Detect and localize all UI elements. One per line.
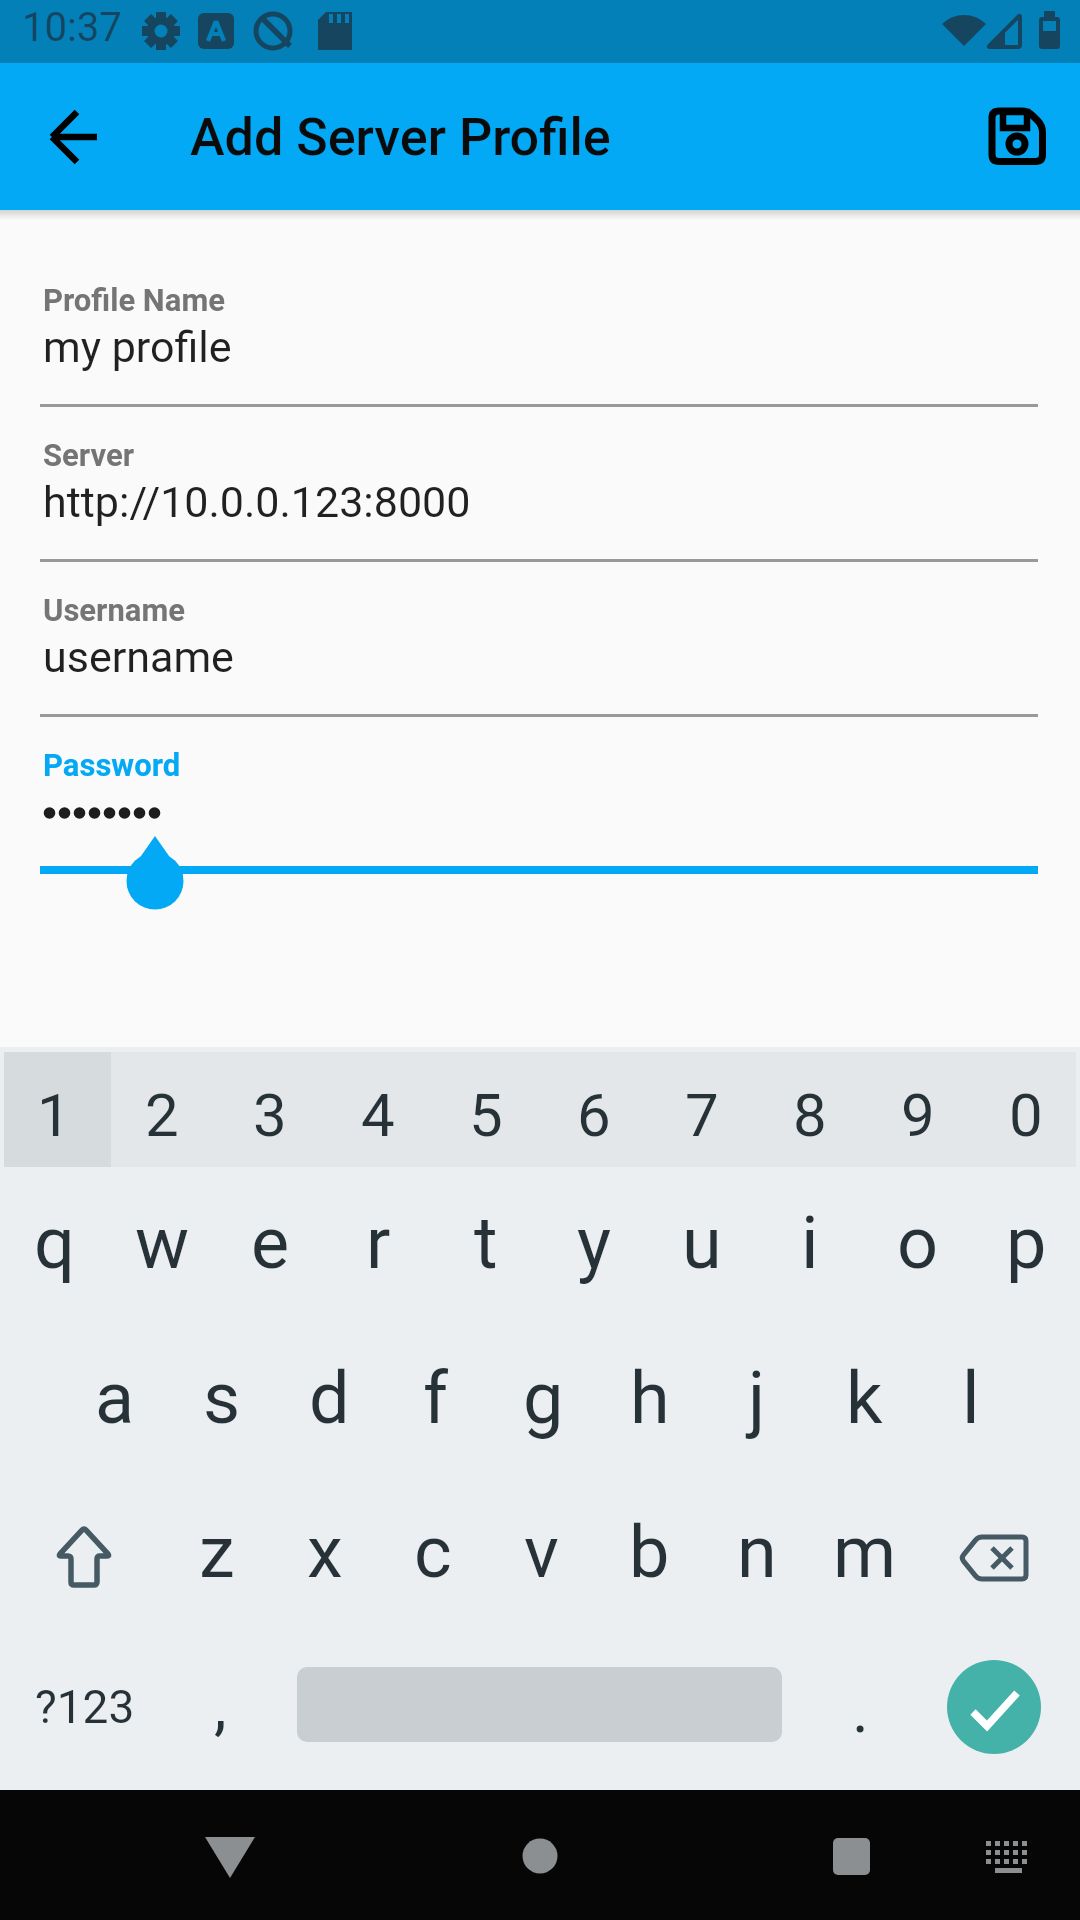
button[interactable]: 6 — [540, 1057, 648, 1172]
button[interactable]: f — [382, 1320, 490, 1475]
button[interactable] — [30, 1500, 140, 1612]
button[interactable] — [40, 582, 1038, 717]
staticText: o — [897, 1201, 939, 1285]
button[interactable]: m — [811, 1474, 919, 1629]
staticText: Username — [43, 592, 186, 628]
staticText: q — [34, 1201, 75, 1285]
button[interactable] — [947, 1660, 1041, 1754]
staticText: 9 — [901, 1080, 935, 1150]
staticText: s — [203, 1356, 241, 1440]
staticText: 2 — [145, 1080, 179, 1150]
button[interactable]: u — [648, 1165, 756, 1320]
button[interactable]: g — [489, 1320, 597, 1475]
button[interactable] — [40, 737, 1038, 877]
button[interactable]: e — [216, 1165, 324, 1320]
button[interactable] — [490, 1806, 590, 1906]
button[interactable]: o — [864, 1165, 972, 1320]
button[interactable]: d — [275, 1320, 383, 1475]
button[interactable]: r — [324, 1165, 432, 1320]
staticText: 5 — [469, 1080, 503, 1150]
button[interactable]: t — [432, 1165, 540, 1320]
staticText: j — [748, 1356, 766, 1440]
button[interactable]: l — [917, 1320, 1025, 1475]
button[interactable]: . — [806, 1633, 914, 1788]
staticText: f — [423, 1356, 449, 1440]
button[interactable]: p — [972, 1165, 1080, 1320]
button[interactable]: , — [166, 1629, 274, 1784]
staticText: 0 — [1009, 1080, 1043, 1150]
button[interactable] — [180, 1806, 280, 1906]
button[interactable]: q — [0, 1165, 108, 1320]
button[interactable] — [40, 427, 1038, 562]
button[interactable] — [980, 100, 1054, 174]
staticText: c — [414, 1510, 452, 1594]
button[interactable]: 7 — [648, 1057, 756, 1172]
staticText: Add Server Profile — [190, 107, 611, 168]
staticText: n — [737, 1510, 777, 1594]
button[interactable]: c — [379, 1474, 487, 1629]
staticText: Server — [43, 437, 134, 473]
button[interactable]: a — [61, 1320, 169, 1475]
button[interactable]: w — [108, 1165, 216, 1320]
button[interactable]: n — [703, 1474, 811, 1629]
staticText: r — [366, 1201, 391, 1285]
staticText: Password — [43, 747, 181, 783]
staticText: k — [846, 1356, 883, 1440]
staticText: g — [523, 1356, 564, 1440]
button[interactable]: 1 — [0, 1057, 108, 1172]
button[interactable]: v — [487, 1474, 595, 1629]
staticText: . — [852, 1673, 869, 1748]
button[interactable]: 5 — [432, 1057, 540, 1172]
button[interactable]: b — [595, 1474, 703, 1629]
button[interactable]: x — [271, 1474, 379, 1629]
button[interactable]: h — [596, 1320, 704, 1475]
staticText: 10:37 — [22, 4, 122, 51]
staticText: 3 — [253, 1080, 287, 1150]
button[interactable] — [33, 95, 117, 179]
staticText: y — [577, 1201, 612, 1285]
button[interactable]: 2 — [108, 1057, 216, 1172]
staticText: 1 — [37, 1080, 71, 1150]
button[interactable]: z — [163, 1474, 271, 1629]
staticText: http://10.0.0.123:8000 — [43, 477, 471, 527]
button[interactable] — [940, 1500, 1050, 1612]
button[interactable]: k — [810, 1320, 918, 1475]
staticText: username — [43, 632, 234, 682]
staticText: d — [309, 1356, 350, 1440]
button[interactable] — [967, 1816, 1047, 1896]
button[interactable]: 8 — [756, 1057, 864, 1172]
button[interactable]: j — [703, 1320, 811, 1475]
button[interactable]: i — [756, 1165, 864, 1320]
button[interactable]: 0 — [972, 1057, 1080, 1172]
staticText: 6 — [577, 1080, 611, 1150]
button[interactable]: s — [168, 1320, 276, 1475]
staticText: ?123 — [35, 1680, 135, 1734]
staticText: z — [199, 1510, 235, 1594]
staticText: t — [474, 1201, 498, 1285]
button[interactable] — [40, 272, 1038, 407]
staticText: 8 — [793, 1080, 827, 1150]
staticText: i — [801, 1201, 819, 1285]
staticText: b — [629, 1510, 670, 1594]
staticText: a — [95, 1356, 135, 1440]
staticText: w — [135, 1201, 190, 1285]
button[interactable]: 4 — [324, 1057, 432, 1172]
staticText: u — [682, 1201, 722, 1285]
button[interactable]: y — [540, 1165, 648, 1320]
button[interactable]: 9 — [864, 1057, 972, 1172]
staticText: 7 — [685, 1080, 719, 1150]
staticText: my profile — [43, 322, 232, 372]
staticText: , — [214, 1669, 227, 1744]
staticText: e — [251, 1201, 290, 1285]
button[interactable]: ?123 — [30, 1655, 140, 1759]
staticText: x — [307, 1510, 343, 1594]
button[interactable] — [801, 1806, 901, 1906]
staticText: m — [833, 1510, 897, 1594]
staticText: Profile Name — [43, 282, 225, 318]
staticText: l — [962, 1356, 980, 1440]
staticText: v — [524, 1510, 559, 1594]
button[interactable]: 3 — [216, 1057, 324, 1172]
staticText: h — [630, 1356, 670, 1440]
staticText: p — [1006, 1201, 1047, 1285]
